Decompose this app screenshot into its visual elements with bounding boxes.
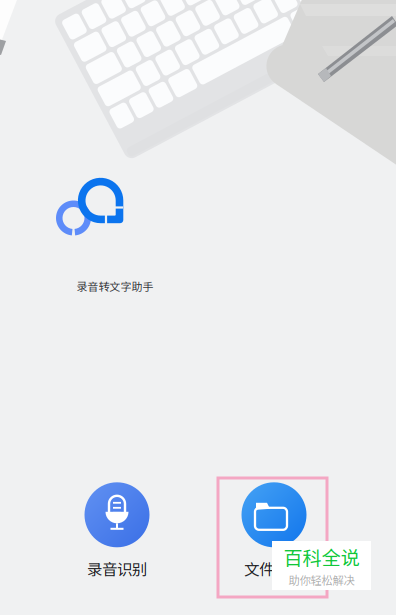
staticText: 录音转文字助手 (76, 278, 153, 294)
button[interactable]: 录音识别 (84, 482, 149, 580)
staticText: 录音识别 (87, 557, 147, 580)
button[interactable]: 文件导入 (241, 482, 306, 580)
staticText: 文件导入 (244, 557, 304, 580)
staticText: 百科全说 (283, 543, 359, 571)
staticText: 助你轻松解决 (288, 572, 354, 588)
